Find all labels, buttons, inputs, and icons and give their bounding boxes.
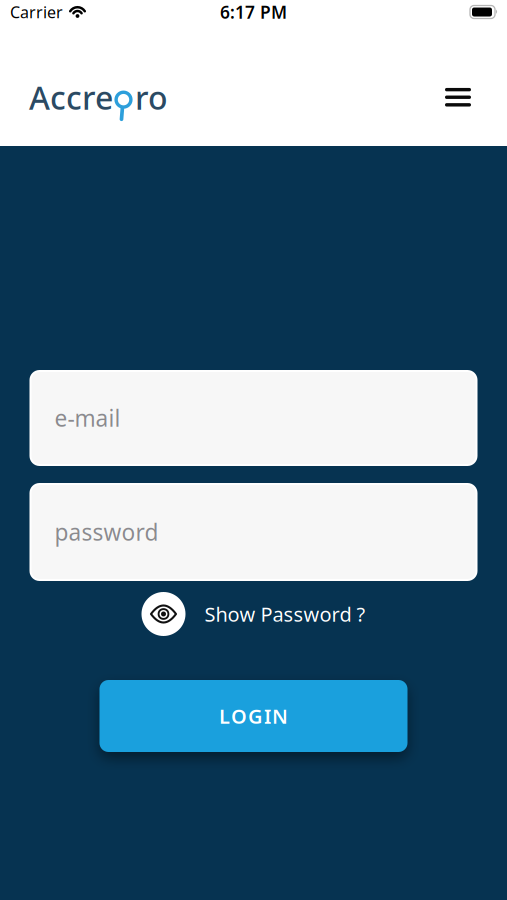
- staticText: Carrier: [10, 1, 63, 23]
- button[interactable]: Menu: [445, 88, 507, 106]
- staticText: password: [54, 517, 158, 547]
- staticText: Accre: [29, 76, 113, 118]
- staticText: e-mail: [54, 403, 120, 433]
- staticText: 6:17 PM: [220, 0, 287, 23]
- button[interactable]: Show Password: [141, 592, 365, 636]
- staticText: LOGIN: [219, 703, 288, 729]
- button[interactable]: LOGIN: [99, 680, 407, 752]
- button[interactable]: password: [30, 484, 476, 580]
- staticText: Show Password ?: [204, 601, 365, 627]
- staticText: ro: [135, 76, 168, 118]
- button[interactable]: e-mail: [30, 371, 476, 465]
